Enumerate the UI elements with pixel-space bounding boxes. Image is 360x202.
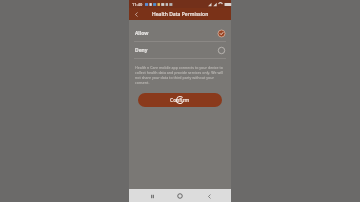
button[interactable]: Allow (129, 25, 231, 41)
button[interactable]: Back (203, 190, 215, 202)
other: Loading (176, 96, 184, 104)
staticText: Deny (135, 47, 148, 54)
button[interactable]: Recents (146, 190, 158, 202)
staticText: Confirm (170, 97, 190, 104)
staticText: 11:40 (132, 2, 143, 7)
staticText: Health n Care mobile app connects to you… (135, 65, 225, 85)
button[interactable]: Home (174, 190, 186, 202)
button[interactable]: Confirm (138, 93, 222, 107)
staticText: Allow (135, 30, 149, 37)
button[interactable]: Deny (129, 42, 231, 58)
button[interactable]: Back (131, 9, 141, 19)
staticText: Health Data Permission (152, 11, 209, 18)
